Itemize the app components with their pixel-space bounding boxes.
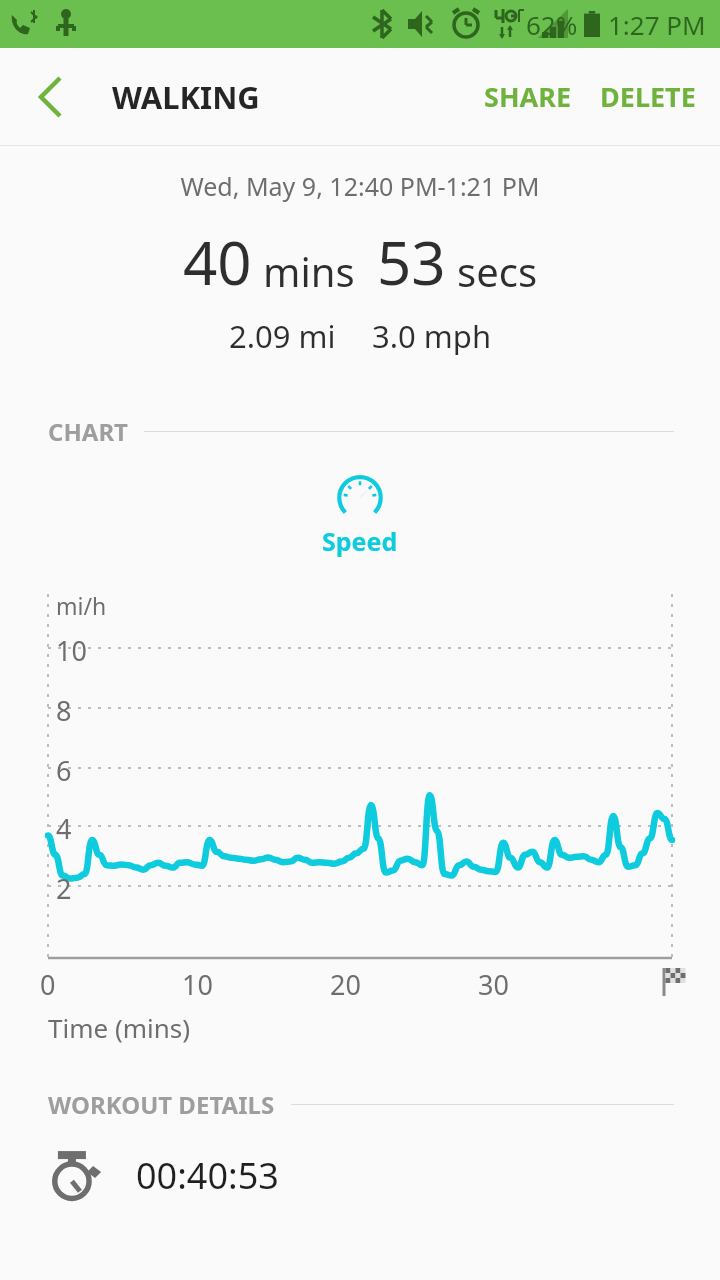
staticText: 20 bbox=[330, 966, 361, 1003]
button[interactable]: Back bbox=[18, 64, 84, 130]
staticText: CHART bbox=[48, 415, 128, 448]
staticText: 40 bbox=[183, 221, 252, 303]
staticText: 10 bbox=[56, 632, 87, 669]
staticText: Speed bbox=[322, 524, 398, 558]
staticText: secs bbox=[457, 244, 538, 298]
staticText: 2.09 mi bbox=[229, 315, 336, 357]
staticText: 10 bbox=[182, 966, 213, 1003]
staticText: WORKOUT DETAILS bbox=[48, 1088, 275, 1121]
staticText: 3.0 mph bbox=[372, 315, 492, 357]
staticText: 53 bbox=[377, 221, 446, 303]
staticText: 8 bbox=[56, 692, 72, 729]
staticText: Time (mins) bbox=[48, 1010, 191, 1045]
staticText: Wed, May 9, 12:40 PM-1:21 PM bbox=[0, 169, 720, 203]
staticText: mins bbox=[263, 244, 355, 298]
staticText: 0 bbox=[40, 966, 56, 1003]
staticText: WALKING bbox=[112, 76, 260, 118]
button[interactable]: Speed bbox=[0, 472, 720, 558]
other: Speed bbox=[332, 472, 388, 518]
staticText: 62% bbox=[526, 7, 578, 42]
staticText: 4 bbox=[56, 810, 72, 847]
staticText: mi/h bbox=[56, 590, 107, 621]
button[interactable]: DELETE bbox=[586, 62, 720, 131]
staticText: 6 bbox=[56, 752, 72, 789]
button[interactable]: SHARE bbox=[470, 62, 586, 131]
staticText: 1:27 PM bbox=[608, 7, 706, 42]
staticText: SHARE bbox=[484, 78, 572, 115]
staticText: 00:40:53 bbox=[136, 1151, 279, 1200]
staticText: 2 bbox=[56, 870, 72, 907]
staticText: DELETE bbox=[600, 78, 696, 115]
other: Duration bbox=[48, 1149, 100, 1201]
button[interactable]: Duration bbox=[0, 1149, 720, 1201]
staticText: 30 bbox=[478, 966, 509, 1003]
